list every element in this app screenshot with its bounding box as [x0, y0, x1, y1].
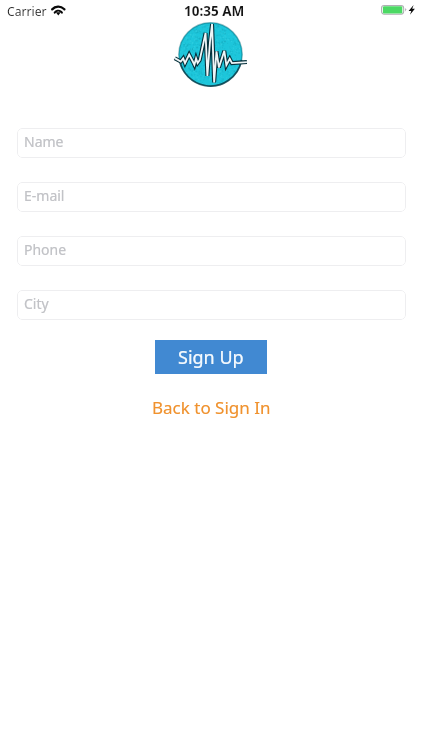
button[interactable]: Phone [17, 236, 406, 266]
button[interactable]: Name [17, 128, 406, 158]
staticText: City [24, 294, 49, 313]
staticText: Name [24, 132, 64, 151]
button[interactable]: Back to Sign In [149, 395, 273, 419]
button[interactable]: City [17, 290, 406, 320]
button[interactable]: App logo [178, 22, 243, 87]
staticText: 10:35 AM [184, 2, 245, 20]
button[interactable]: Sign Up [155, 340, 267, 374]
staticText: Carrier [7, 3, 47, 20]
staticText: Sign Up [178, 345, 244, 370]
staticText: Phone [24, 240, 67, 259]
button[interactable]: E-mail [17, 182, 406, 212]
staticText: E-mail [24, 186, 65, 205]
staticText: Back to Sign In [152, 396, 271, 419]
